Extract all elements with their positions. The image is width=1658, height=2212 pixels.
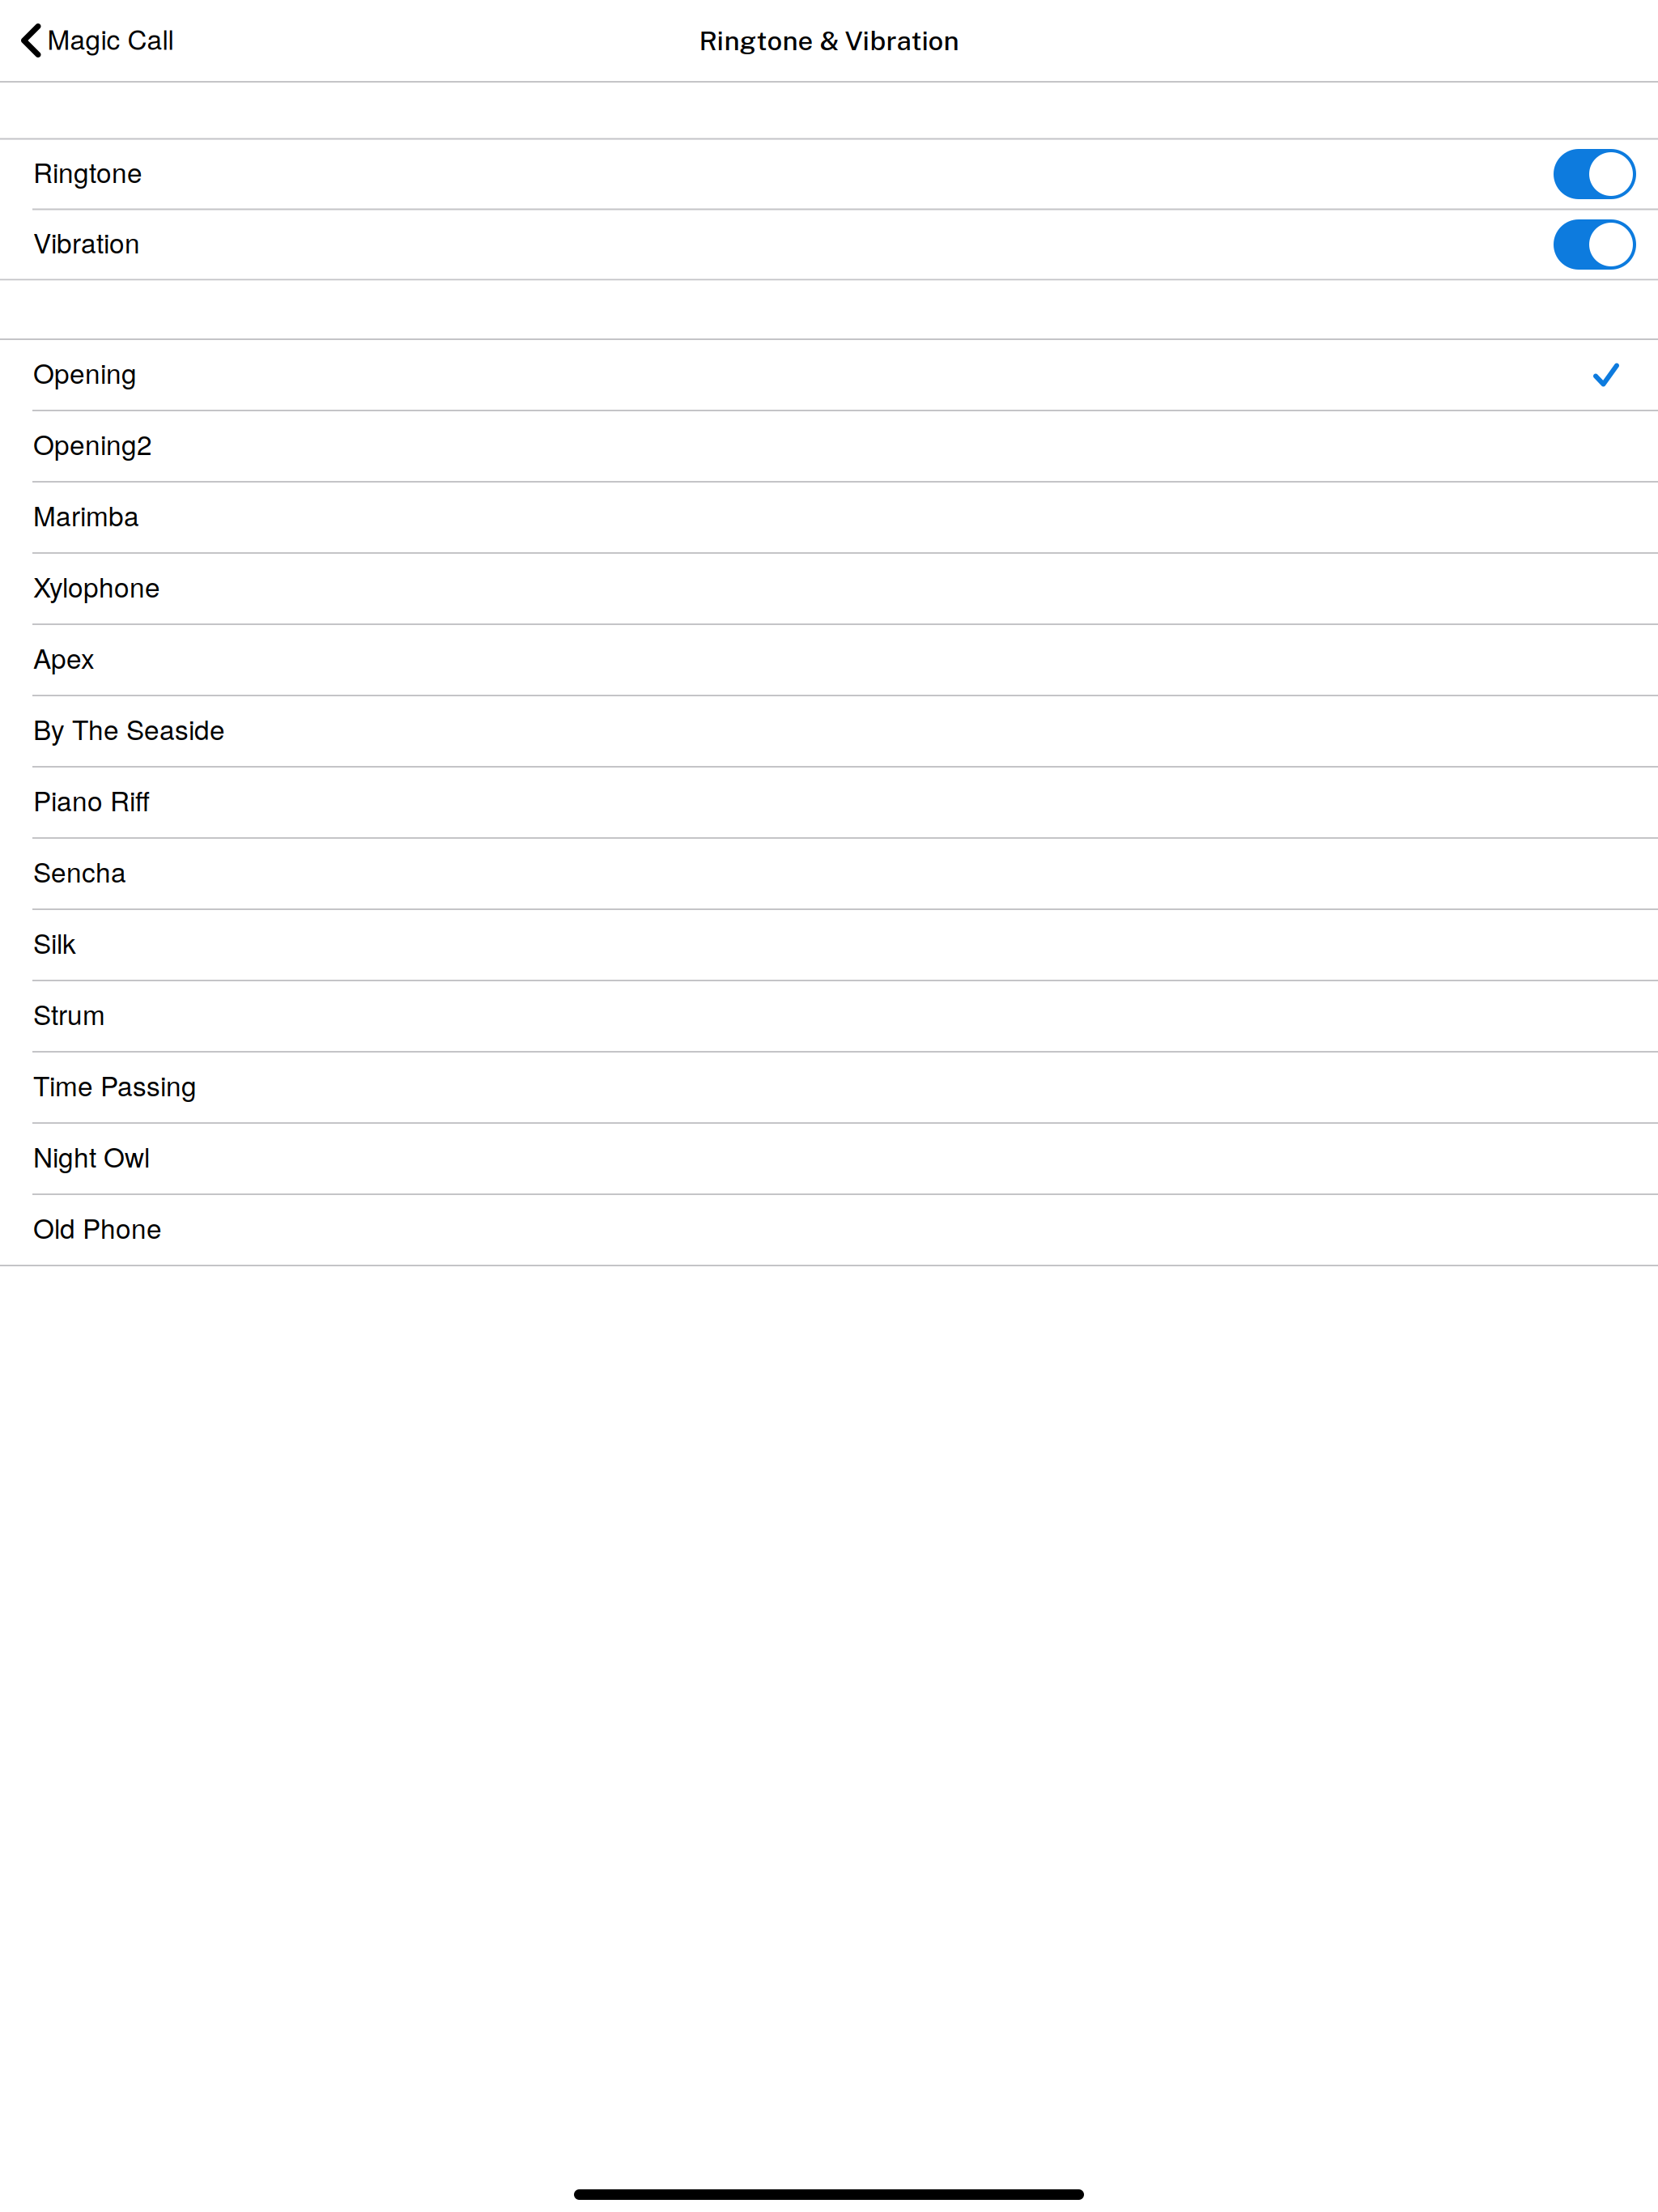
- staticText: Old Phone: [33, 1208, 162, 1246]
- button[interactable]: Opening2: [0, 411, 1658, 481]
- staticText: Night Owl: [33, 1136, 150, 1175]
- staticText: Apex: [33, 638, 95, 676]
- button[interactable]: Xylophone: [0, 554, 1658, 623]
- staticText: Time Passing: [33, 1065, 197, 1104]
- button[interactable]: Night Owl: [0, 1124, 1658, 1193]
- button[interactable]: Silk: [0, 910, 1658, 980]
- button[interactable]: Opening: [0, 340, 1658, 410]
- button[interactable]: Back to Magic Call: [0, 0, 190, 81]
- button[interactable]: Time Passing: [0, 1053, 1658, 1122]
- staticText: Sencha: [33, 851, 126, 890]
- staticText: Strum: [33, 994, 105, 1033]
- staticText: Xylophone: [33, 566, 160, 605]
- staticText: Ringtone: [33, 152, 142, 191]
- button[interactable]: Old Phone: [0, 1195, 1658, 1265]
- button[interactable]: Strum: [0, 981, 1658, 1051]
- staticText: Opening2: [33, 424, 152, 463]
- button[interactable]: Sencha: [0, 839, 1658, 908]
- staticText: Opening: [33, 353, 137, 391]
- button[interactable]: By The Seaside: [0, 696, 1658, 766]
- button[interactable]: Ringtone: [0, 140, 1658, 208]
- staticText: Ringtone & Vibration: [699, 25, 959, 56]
- button[interactable]: Piano Riff: [0, 768, 1658, 837]
- button[interactable]: Vibration: [0, 210, 1658, 279]
- staticText: Marimba: [33, 495, 139, 534]
- staticText: By The Seaside: [33, 709, 225, 748]
- button[interactable]: Marimba: [0, 483, 1658, 552]
- staticText: Magic Call: [47, 19, 174, 57]
- staticText: Piano Riff: [33, 780, 150, 819]
- staticText: Silk: [33, 923, 76, 961]
- staticText: Vibration: [33, 222, 140, 261]
- button[interactable]: Apex: [0, 625, 1658, 695]
